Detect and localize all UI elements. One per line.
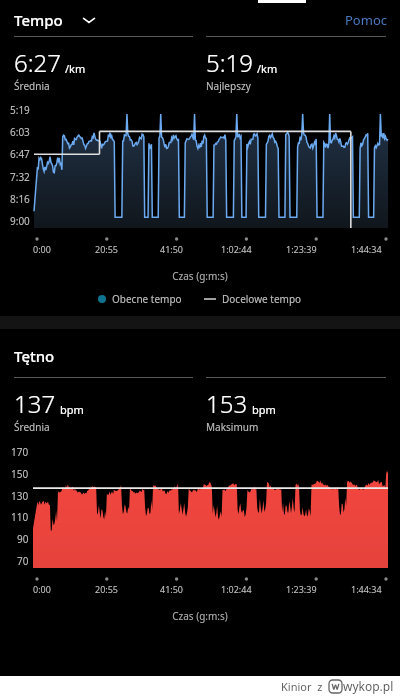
staticText: Czas (g:m:s) — [0, 269, 400, 283]
staticText: 20:55 — [95, 583, 119, 595]
staticText: 150 — [11, 467, 29, 481]
staticText: wykop.pl — [343, 678, 394, 694]
staticText: 170 — [11, 445, 29, 459]
staticText: 9:00 — [10, 214, 30, 228]
staticText: Najlepszy — [206, 79, 251, 93]
staticText: 5:19 — [206, 46, 253, 79]
staticText: Tętno — [14, 346, 55, 366]
button[interactable]: Pomoc — [345, 11, 387, 29]
staticText: Czas (g:m:s) — [0, 609, 400, 623]
staticText: 110 — [11, 510, 29, 524]
staticText: Średnia — [14, 420, 50, 434]
button[interactable]: 137 — [14, 377, 193, 434]
staticText: 1:44:34 — [351, 583, 382, 595]
staticText: 153 — [206, 387, 248, 420]
button[interactable]: 153 — [206, 377, 386, 434]
staticText: 6:47 — [10, 147, 30, 161]
staticText: 90 — [17, 532, 29, 546]
staticText: 6:27 — [14, 46, 61, 79]
staticText: Pomoc — [345, 11, 387, 29]
staticText: 1:23:39 — [286, 583, 317, 595]
staticText: bpm — [252, 402, 276, 417]
staticText: Kinior z — [281, 679, 323, 694]
other: Rozwiń — [81, 12, 97, 28]
staticText: 8:16 — [10, 192, 30, 206]
staticText: /km — [257, 61, 278, 76]
staticText: Średnia — [14, 79, 50, 93]
staticText: Obecne tempo — [112, 292, 182, 306]
staticText: bpm — [60, 402, 84, 417]
staticText: 70 — [17, 554, 29, 568]
staticText: 0:00 — [33, 583, 51, 595]
staticText: 41:50 — [160, 583, 184, 595]
staticText: 1:44:34 — [351, 243, 382, 255]
staticText: 0:00 — [33, 243, 51, 255]
staticText: 5:19 — [10, 103, 30, 117]
staticText: Maksimum — [206, 420, 259, 434]
staticText: 137 — [14, 387, 56, 420]
staticText: 1:02:44 — [221, 583, 252, 595]
staticText: Docelowe tempo — [222, 292, 302, 306]
staticText: 1:02:44 — [221, 243, 252, 255]
staticText: 41:50 — [160, 243, 184, 255]
button[interactable]: 5:19 — [206, 36, 386, 93]
button[interactable]: Docelowe tempo — [204, 292, 302, 306]
button[interactable]: 6:27 — [14, 36, 193, 93]
staticText: 20:55 — [95, 243, 119, 255]
button[interactable]: Tempo — [14, 10, 97, 30]
staticText: 7:32 — [10, 170, 30, 184]
staticText: 130 — [11, 489, 29, 503]
button[interactable]: Obecne tempo — [98, 292, 182, 306]
staticText: /km — [65, 61, 86, 76]
staticText: 1:23:39 — [286, 243, 317, 255]
staticText: 6:03 — [10, 125, 30, 139]
staticText: Tempo — [14, 10, 63, 30]
